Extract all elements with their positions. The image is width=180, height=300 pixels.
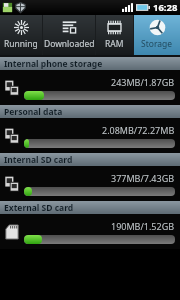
button[interactable]: 377MB/7.43GB <box>0 166 180 201</box>
staticText: 243MB/1.87GB <box>111 76 175 88</box>
staticText: RAM <box>105 38 124 50</box>
staticText: 2.08MB/72.27MB <box>102 124 175 136</box>
staticText: Downloaded <box>44 38 95 50</box>
staticText: Running <box>4 38 38 50</box>
button[interactable]: 2.08MB/72.27MB <box>0 118 180 153</box>
staticText: Internal SD card <box>4 154 73 166</box>
staticText: Storage <box>141 38 173 50</box>
button[interactable]: 190MB/1.52GB <box>0 214 180 249</box>
button[interactable]: Storage <box>134 15 180 55</box>
staticText: 190MB/1.52GB <box>111 220 175 232</box>
button[interactable]: 243MB/1.87GB <box>0 70 180 105</box>
button[interactable]: Running <box>0 15 42 55</box>
staticText: 377MB/7.43GB <box>111 172 175 184</box>
button[interactable]: RAM <box>96 15 133 55</box>
staticText: 16:28 <box>153 1 178 14</box>
button[interactable]: Downloaded <box>43 15 95 55</box>
staticText: Personal data <box>4 106 63 118</box>
staticText: Internal phone storage <box>4 58 103 70</box>
staticText: External SD card <box>4 202 74 214</box>
